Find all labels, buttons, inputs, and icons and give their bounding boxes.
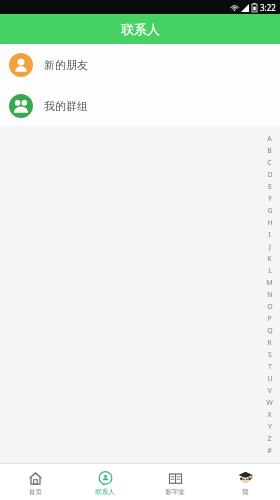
- button[interactable]: 首页: [0, 468, 70, 496]
- staticText: G: [267, 206, 273, 216]
- staticText: S: [268, 350, 272, 360]
- staticText: V: [267, 386, 272, 396]
- staticText: M: [266, 278, 273, 288]
- staticText: L: [268, 266, 272, 276]
- button[interactable]: 我: [210, 468, 280, 496]
- button[interactable]: 我的群组: [0, 85, 280, 126]
- button[interactable]: 新的朋友: [0, 44, 280, 85]
- staticText: B: [267, 146, 272, 156]
- staticText: D: [267, 170, 273, 180]
- staticText: J: [269, 242, 271, 252]
- staticText: I: [268, 230, 271, 240]
- staticText: O: [267, 302, 273, 312]
- staticText: E: [268, 182, 272, 192]
- staticText: K: [267, 254, 272, 264]
- staticText: F: [268, 194, 272, 204]
- staticText: P: [267, 314, 272, 324]
- staticText: Z: [267, 434, 272, 444]
- staticText: 联系人: [95, 488, 115, 496]
- button[interactable]: 联系人: [70, 468, 140, 496]
- staticText: R: [267, 338, 272, 348]
- staticText: 新的朋友: [44, 58, 88, 72]
- staticText: C: [267, 158, 272, 168]
- staticText: 3:22: [260, 2, 276, 13]
- staticText: 联系人: [121, 21, 160, 37]
- staticText: 首页: [29, 488, 42, 496]
- button[interactable]: Alphabet index: [263, 134, 276, 456]
- staticText: 我: [242, 488, 249, 496]
- staticText: N: [267, 290, 273, 300]
- staticText: X: [267, 410, 272, 420]
- staticText: #: [267, 446, 272, 456]
- staticText: T: [268, 362, 272, 372]
- staticText: 影字堂: [165, 488, 185, 496]
- staticText: A: [267, 134, 272, 144]
- staticText: W: [266, 398, 273, 408]
- staticText: Y: [268, 422, 272, 432]
- staticText: H: [267, 218, 273, 228]
- staticText: U: [267, 374, 273, 384]
- staticText: 我的群组: [44, 99, 88, 113]
- button[interactable]: 影字堂: [140, 468, 210, 496]
- staticText: Q: [267, 326, 273, 336]
